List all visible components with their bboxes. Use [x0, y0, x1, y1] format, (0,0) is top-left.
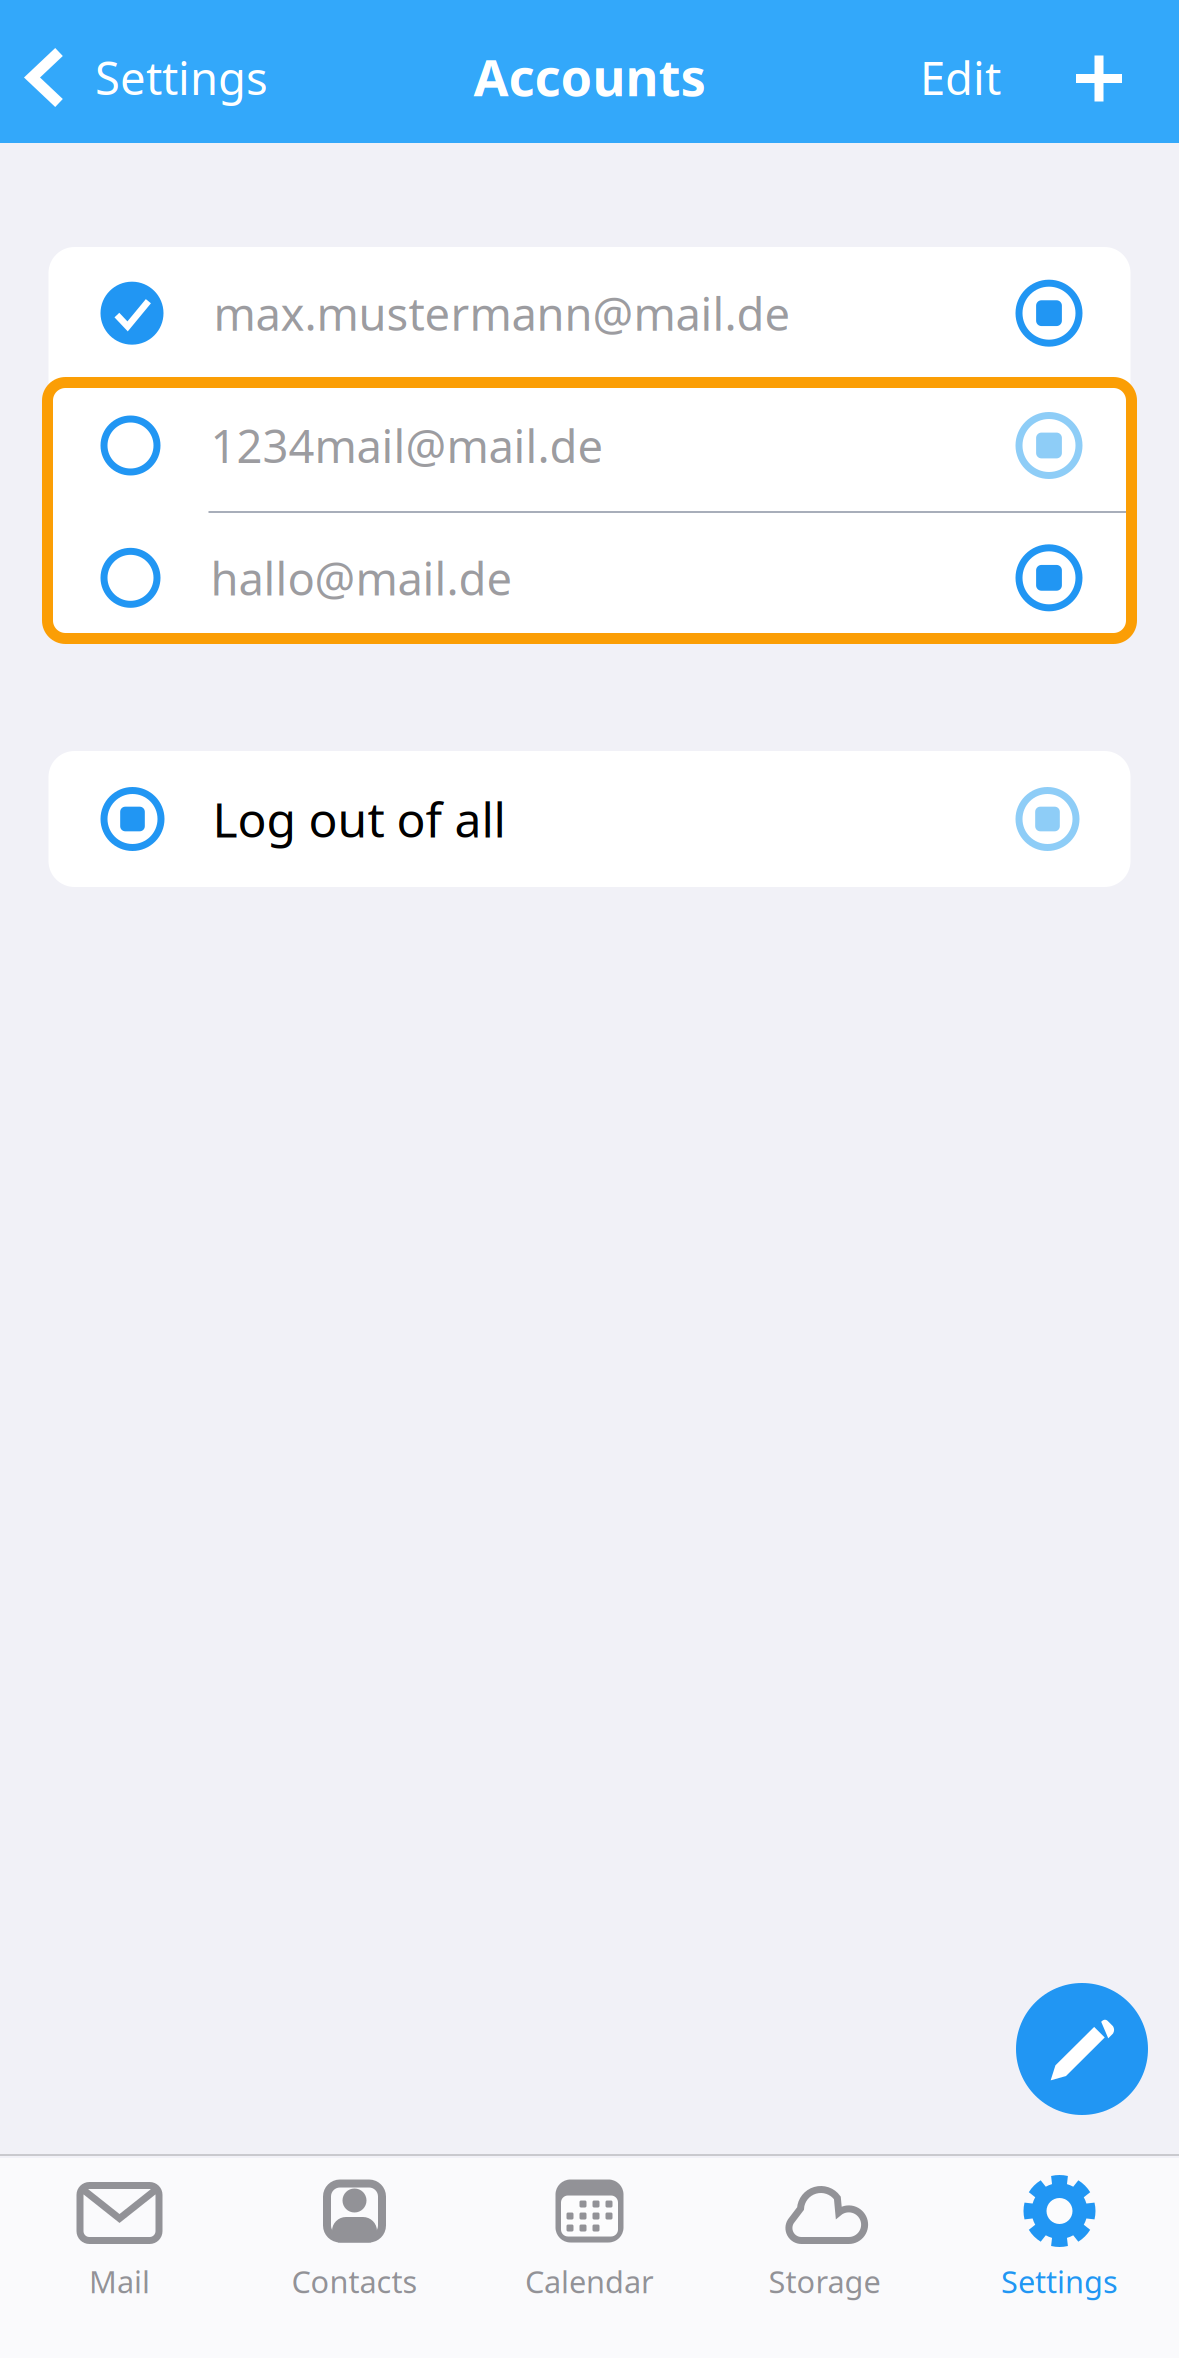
button[interactable]: Contacts	[237, 2156, 472, 2354]
staticText: 1234mail@mail.de	[210, 415, 603, 476]
button[interactable]: Add account	[1031, 0, 1179, 143]
button[interactable]: Settings	[942, 2156, 1177, 2354]
staticText: Calendar	[525, 2261, 654, 2302]
button[interactable]: Compose	[1016, 1983, 1148, 2115]
button[interactable]: max.mustermann@mail.de	[48, 247, 1130, 379]
staticText: Edit	[920, 47, 1001, 108]
staticText: Storage	[768, 2261, 880, 2302]
staticText: Settings	[1001, 2261, 1118, 2302]
button[interactable]: Log out of all	[48, 751, 1130, 887]
staticText: Log out of all	[212, 787, 505, 851]
button[interactable]: Settings	[0, 0, 292, 143]
staticText: hallo@mail.de	[210, 548, 512, 608]
button[interactable]: hallo@mail.de	[48, 512, 1130, 644]
button[interactable]: Calendar	[472, 2156, 707, 2354]
staticText: Accounts	[473, 43, 705, 110]
staticText: max.mustermann@mail.de	[213, 283, 790, 343]
button[interactable]: Storage	[707, 2156, 942, 2354]
staticText: Mail	[89, 2261, 150, 2302]
button[interactable]: Mail	[2, 2156, 237, 2354]
staticText: Settings	[95, 47, 268, 108]
button[interactable]: Edit	[890, 0, 1031, 143]
button[interactable]: 1234mail@mail.de	[48, 379, 1130, 512]
staticText: Contacts	[291, 2261, 417, 2302]
